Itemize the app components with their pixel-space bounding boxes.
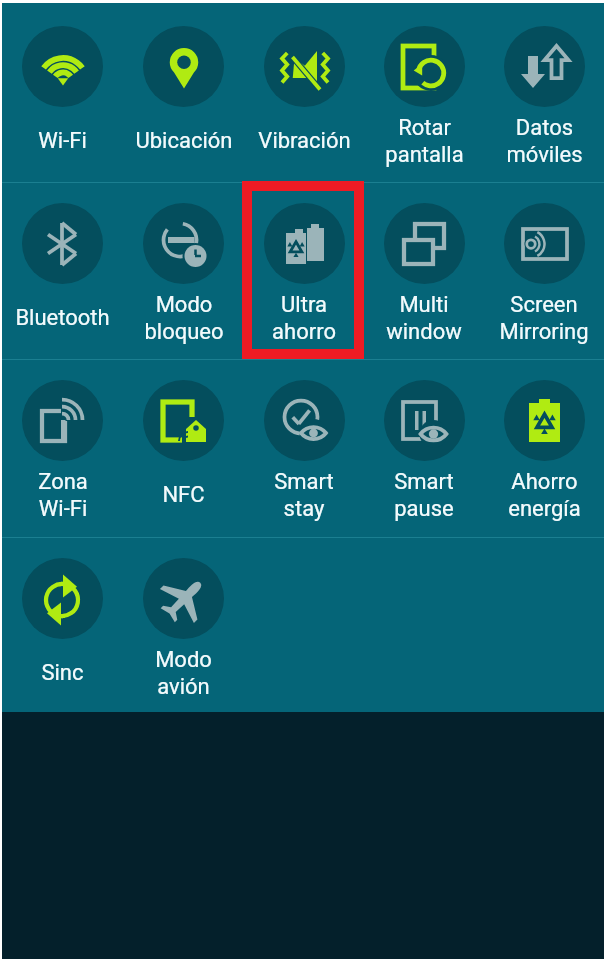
staticText: Vibración [258, 128, 351, 154]
button[interactable]: Ultra ahorro [244, 183, 364, 359]
staticText: Ultra ahorro [272, 292, 336, 344]
button[interactable]: Rotar pantalla [364, 6, 484, 182]
button[interactable]: Ubicación [123, 6, 244, 182]
staticText: Datos móviles [506, 115, 583, 167]
button[interactable]: Wi-Fi [2, 6, 123, 182]
staticText: Smart pause [394, 469, 454, 521]
staticText: Zona Wi-Fi [38, 469, 88, 521]
button[interactable]: Smart stay [244, 360, 364, 537]
staticText: Wi-Fi [38, 128, 87, 154]
button[interactable]: Screen Mirroring [484, 183, 604, 359]
staticText: Sinc [41, 660, 84, 686]
button[interactable]: Ahorro energía [484, 360, 604, 537]
staticText: Smart stay [274, 469, 334, 521]
staticText: Ahorro energía [508, 469, 581, 521]
button[interactable]: Sinc [2, 538, 123, 714]
staticText: Rotar pantalla [385, 115, 464, 167]
staticText: Modo avión [155, 647, 212, 699]
button[interactable]: Multi window [364, 183, 484, 359]
staticText: Modo bloqueo [144, 292, 224, 344]
button[interactable]: NFC [123, 360, 244, 537]
staticText: Bluetooth [15, 305, 110, 331]
button[interactable]: Modo bloqueo [123, 183, 244, 359]
button[interactable]: Datos móviles [484, 6, 604, 182]
staticText: Ubicación [135, 128, 233, 154]
staticText: Screen Mirroring [499, 292, 589, 344]
staticText: Multi window [386, 292, 462, 344]
button[interactable]: Zona Wi-Fi [2, 360, 123, 537]
staticText: NFC [162, 482, 205, 508]
button[interactable]: Vibración [244, 6, 364, 182]
button[interactable]: Modo avión [123, 538, 244, 714]
button[interactable]: Bluetooth [2, 183, 123, 359]
button[interactable]: Smart pause [364, 360, 484, 537]
